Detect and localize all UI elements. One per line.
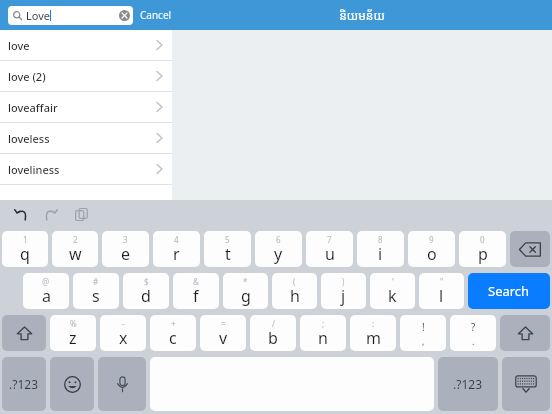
- button[interactable]: ?: [450, 315, 496, 351]
- button[interactable]: :: [350, 315, 396, 351]
- staticText: e: [121, 243, 131, 265]
- staticText: .: [472, 335, 475, 347]
- staticText: !: [422, 320, 425, 334]
- button[interactable]: [98, 357, 146, 411]
- button[interactable]: [2, 315, 46, 351]
- staticText: 6: [276, 234, 281, 245]
- button[interactable]: 9: [408, 231, 455, 267]
- staticText: b: [268, 327, 278, 349]
- staticText: Search: [488, 282, 530, 300]
- button[interactable]: Undo: [10, 203, 32, 225]
- button[interactable]: Redo: [40, 203, 62, 225]
- staticText: 5: [225, 234, 230, 245]
- button[interactable]: !: [400, 315, 446, 351]
- button[interactable]: Love: [8, 6, 133, 25]
- button[interactable]: 8: [357, 231, 404, 267]
- button[interactable]: 6: [255, 231, 302, 267]
- button[interactable]: Search: [468, 273, 550, 309]
- staticText: h: [290, 285, 300, 307]
- staticText: 8: [378, 234, 383, 245]
- button[interactable]: ;: [300, 315, 346, 351]
- staticText: 2: [73, 234, 78, 245]
- staticText: 7: [327, 234, 332, 245]
- button[interactable]: 2: [52, 231, 98, 267]
- button[interactable]: 0: [459, 231, 506, 267]
- button[interactable]: [502, 357, 550, 411]
- staticText: loveaffair: [8, 100, 58, 115]
- staticText: Love: [26, 8, 50, 23]
- staticText: (: [293, 276, 296, 287]
- staticText: *: [243, 276, 248, 287]
- staticText: k: [388, 285, 397, 307]
- staticText: s: [92, 285, 100, 307]
- button[interactable]: %: [50, 315, 96, 351]
- staticText: ?: [471, 320, 476, 334]
- button[interactable]: 4: [153, 231, 200, 267]
- staticText: ,: [422, 335, 425, 347]
- staticText: love: [8, 38, 30, 53]
- button[interactable]: loveaffair: [0, 92, 172, 122]
- button[interactable]: .?123: [2, 357, 46, 411]
- staticText: -: [122, 318, 125, 329]
- button[interactable]: 5: [204, 231, 251, 267]
- staticText: +: [171, 318, 176, 329]
- staticText: Cancel: [140, 8, 172, 22]
- button[interactable]: love (2): [0, 61, 172, 91]
- staticText: f: [193, 285, 199, 307]
- staticText: v: [219, 327, 228, 349]
- staticText: 9: [429, 234, 434, 245]
- button[interactable]: =: [200, 315, 246, 351]
- button[interactable]: .?123: [438, 357, 498, 411]
- staticText: :: [372, 318, 375, 329]
- staticText: %: [70, 318, 77, 329]
- button[interactable]: [500, 315, 550, 351]
- staticText: .?123: [9, 376, 39, 392]
- staticText: 0: [480, 234, 485, 245]
- staticText: loveliness: [8, 162, 60, 177]
- staticText: =: [221, 318, 226, 329]
- button[interactable]: ): [321, 273, 366, 309]
- button[interactable]: 3: [102, 231, 149, 267]
- staticText: និយមន័យ: [339, 7, 385, 23]
- staticText: 3: [123, 234, 128, 245]
- button[interactable]: loveless: [0, 123, 172, 153]
- button[interactable]: loveliness: [0, 154, 172, 184]
- staticText: c: [169, 327, 177, 349]
- button[interactable]: -: [100, 315, 146, 351]
- button[interactable]: +: [150, 315, 196, 351]
- button[interactable]: Cancel: [140, 0, 172, 30]
- button[interactable]: Paste: [70, 203, 92, 225]
- button[interactable]: *: [223, 273, 268, 309]
- staticText: ): [342, 276, 345, 287]
- button[interactable]: (: [272, 273, 317, 309]
- button[interactable]: #: [73, 273, 119, 309]
- button[interactable]: 7: [306, 231, 353, 267]
- button[interactable]: [510, 231, 550, 267]
- button[interactable]: @: [23, 273, 69, 309]
- button[interactable]: Clear text: [119, 10, 130, 21]
- button[interactable]: love: [0, 30, 172, 60]
- button[interactable]: ': [370, 273, 415, 309]
- button[interactable]: ": [419, 273, 464, 309]
- staticText: i: [378, 243, 383, 265]
- staticText: y: [274, 243, 283, 265]
- staticText: t: [225, 243, 231, 265]
- staticText: m: [366, 327, 381, 349]
- button[interactable]: $: [123, 273, 169, 309]
- button[interactable]: /: [250, 315, 296, 351]
- staticText: o: [427, 243, 437, 265]
- button[interactable]: [50, 357, 94, 411]
- staticText: l: [439, 285, 444, 307]
- staticText: w: [69, 243, 82, 265]
- staticText: /: [272, 318, 275, 329]
- staticText: &: [193, 276, 199, 287]
- button[interactable]: &: [173, 273, 219, 309]
- staticText: q: [20, 243, 30, 265]
- staticText: ;: [322, 318, 325, 329]
- button[interactable]: 1: [2, 231, 48, 267]
- staticText: love (2): [8, 69, 46, 84]
- staticText: p: [478, 243, 488, 265]
- staticText: loveless: [8, 131, 50, 146]
- staticText: .?123: [453, 376, 483, 392]
